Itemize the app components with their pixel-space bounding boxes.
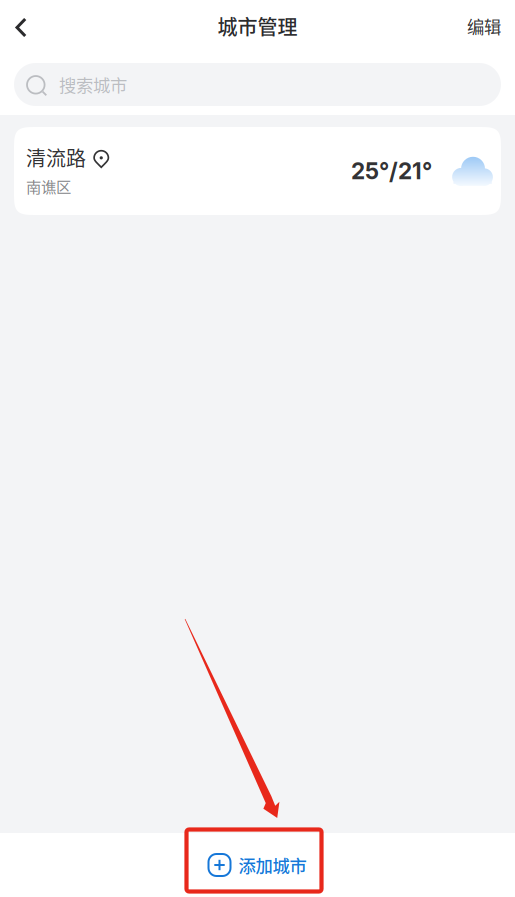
staticText: 搜索城市 [59,72,127,97]
button[interactable]: 添加城市 [0,833,515,897]
staticText: 添加城市 [238,852,306,878]
button[interactable]: 清流路 [14,127,501,215]
button[interactable]: 编辑 [453,0,515,52]
staticText: 编辑 [467,13,501,39]
button[interactable]: 搜索城市 [14,63,501,106]
staticText: 城市管理 [217,11,297,40]
staticText: 南谯区 [26,175,71,197]
button[interactable]: 返回 [0,0,42,52]
staticText: 25°/21° [351,157,432,185]
staticText: 清流路 [26,143,86,172]
